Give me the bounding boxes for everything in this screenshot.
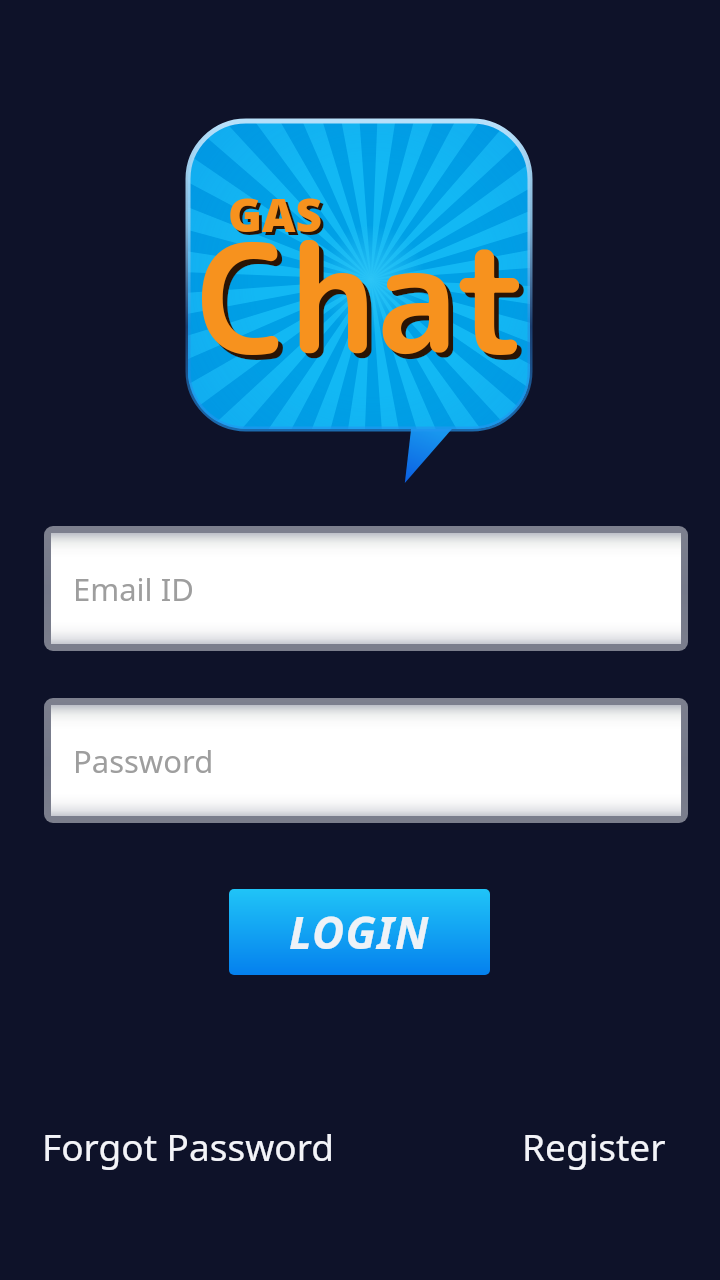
staticText: Register (522, 1121, 666, 1171)
button[interactable]: Password (51, 705, 681, 816)
button[interactable]: Email ID (51, 533, 681, 644)
staticText: LOGIN (289, 902, 430, 962)
staticText: Forgot Password (42, 1121, 334, 1171)
staticText: GAS (231, 186, 325, 249)
staticText: Chat (197, 192, 530, 401)
button[interactable]: LOGIN (229, 889, 490, 975)
button[interactable]: Forgot Password (42, 1121, 334, 1171)
staticText: GAS (228, 183, 322, 246)
button[interactable]: Register (522, 1121, 666, 1171)
staticText: Chat (202, 197, 534, 406)
staticText: Password (73, 740, 214, 782)
other: GAS Chat logo (188, 121, 530, 487)
staticText: Email ID (73, 568, 194, 610)
